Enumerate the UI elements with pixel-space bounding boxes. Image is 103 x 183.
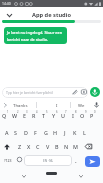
- staticText: A: [5, 129, 9, 136]
- staticText: B: [55, 143, 59, 150]
- staticText: We: [78, 102, 85, 108]
- staticText: 8: [75, 110, 77, 114]
- button[interactable]: [1, 100, 10, 109]
- staticText: O: [80, 112, 85, 119]
- button[interactable]: D: [21, 127, 30, 138]
- button[interactable]: [5, 11, 14, 19]
- staticText: W: [12, 112, 18, 119]
- staticText: P: [90, 112, 94, 119]
- button[interactable]: R: [29, 110, 38, 121]
- button[interactable]: K: [70, 127, 79, 138]
- button[interactable]: J: [60, 127, 69, 138]
- button[interactable]: I: [68, 110, 77, 121]
- staticText: C: [36, 143, 40, 150]
- button[interactable]: N: [62, 141, 71, 152]
- button[interactable]: W: [10, 110, 19, 121]
- button[interactable]: B: [52, 141, 61, 152]
- button[interactable]: P: [87, 110, 96, 121]
- button[interactable]: Q: [0, 110, 9, 121]
- staticText: I: [72, 112, 74, 119]
- button[interactable]: M: [71, 141, 80, 152]
- button[interactable]: T: [39, 110, 48, 121]
- staticText: Thanks: [13, 102, 28, 108]
- staticText: 1: [7, 110, 9, 114]
- button[interactable]: Je bent nu ingelogd. Stuur een bericht n…: [4, 27, 67, 44]
- button[interactable]: X: [24, 141, 33, 152]
- button[interactable]: Thanks: [8, 100, 32, 109]
- staticText: N: [64, 143, 69, 150]
- staticText: 6: [56, 110, 58, 114]
- staticText: ?123: [4, 158, 12, 163]
- button[interactable]: E: [20, 110, 29, 121]
- staticText: D: [24, 129, 28, 136]
- button[interactable]: [46, 172, 57, 175]
- staticText: R: [32, 112, 36, 119]
- button[interactable]: ?123: [1, 154, 15, 166]
- staticText: I: [56, 102, 58, 108]
- button[interactable]: C: [33, 141, 42, 152]
- button[interactable]: EN · NL: [24, 155, 72, 166]
- button[interactable]: H: [51, 127, 60, 138]
- button[interactable]: O: [78, 110, 87, 121]
- staticText: 9: [85, 110, 87, 114]
- staticText: T: [42, 112, 46, 119]
- staticText: K: [73, 129, 77, 136]
- staticText: G: [44, 129, 48, 136]
- staticText: S: [14, 129, 17, 136]
- button[interactable]: .: [71, 155, 80, 167]
- button[interactable]: [20, 172, 27, 179]
- staticText: 4: [36, 110, 38, 114]
- staticText: J: [64, 129, 66, 136]
- staticText: 7: [65, 110, 67, 114]
- staticText: 3: [26, 110, 28, 114]
- button[interactable]: G: [41, 127, 50, 138]
- staticText: EN · NL: [43, 159, 54, 163]
- staticText: 5: [46, 110, 48, 114]
- staticText: App de studio: [32, 11, 71, 19]
- staticText: Z: [18, 143, 22, 150]
- button[interactable]: L: [80, 127, 89, 138]
- staticText: Q: [2, 112, 7, 119]
- button[interactable]: Y: [49, 110, 58, 121]
- button[interactable]: [85, 156, 100, 167]
- staticText: Y: [52, 112, 56, 119]
- button[interactable]: I: [45, 100, 69, 109]
- button[interactable]: Z: [15, 141, 24, 152]
- button[interactable]: [92, 100, 101, 109]
- staticText: V: [46, 143, 50, 150]
- button[interactable]: We: [70, 100, 92, 109]
- button[interactable]: [14, 154, 24, 165]
- button[interactable]: Typ hier je bericht (verplicht): [2, 87, 88, 98]
- button[interactable]: U: [58, 110, 67, 121]
- button[interactable]: [77, 172, 84, 179]
- staticText: E: [23, 112, 27, 119]
- staticText: U: [61, 112, 65, 119]
- button[interactable]: F: [31, 127, 40, 138]
- staticText: 2: [17, 110, 19, 114]
- staticText: 0: [94, 110, 96, 114]
- button[interactable]: [83, 141, 93, 152]
- staticText: X: [27, 143, 31, 150]
- staticText: .: [75, 157, 77, 165]
- button[interactable]: V: [43, 141, 52, 152]
- button[interactable]: A: [2, 127, 11, 138]
- staticText: L: [83, 129, 86, 136]
- staticText: Typ hier je bericht (verplicht): [6, 90, 53, 95]
- staticText: F: [34, 129, 37, 136]
- button[interactable]: [90, 87, 100, 97]
- staticText: 14:40: [2, 1, 11, 6]
- button[interactable]: [1, 141, 13, 152]
- staticText: H: [53, 129, 58, 136]
- button[interactable]: S: [11, 127, 20, 138]
- staticText: Je bent nu ingelogd. Stuur een bericht n…: [7, 30, 63, 43]
- staticText: M: [73, 143, 78, 150]
